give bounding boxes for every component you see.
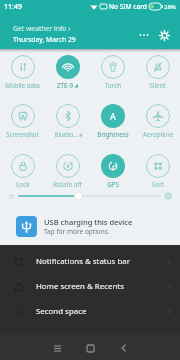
staticText: 11:49 bbox=[4, 2, 22, 12]
staticText: No SIM card bbox=[109, 2, 147, 11]
button[interactable]: Second space bbox=[0, 299, 180, 324]
staticText: Blueto.. bbox=[54, 130, 77, 138]
button[interactable]: Home bbox=[79, 337, 101, 359]
staticText: Torch bbox=[105, 81, 121, 89]
staticText: A bbox=[110, 110, 116, 122]
button[interactable]: Recents bbox=[46, 337, 68, 359]
button[interactable]: Rotate off bbox=[45, 154, 90, 188]
staticText: Screenshot bbox=[6, 130, 39, 138]
staticText: Lock bbox=[16, 180, 30, 188]
staticText: Home screen & Recents bbox=[36, 281, 124, 292]
button[interactable] bbox=[19, 190, 160, 202]
staticText: Tap for more options. bbox=[44, 227, 110, 236]
staticText: Silent bbox=[149, 81, 166, 89]
button[interactable]: GPS bbox=[90, 154, 135, 188]
staticText: Sort bbox=[152, 180, 164, 188]
staticText: ZTE-9 bbox=[57, 81, 73, 89]
button[interactable]: Screenshot bbox=[0, 104, 45, 138]
button[interactable]: USB charging this device bbox=[0, 212, 180, 240]
staticText: Get weather info › bbox=[13, 24, 71, 33]
staticText: Rotate off bbox=[53, 180, 82, 188]
button[interactable]: Silent bbox=[135, 55, 180, 89]
staticText: 28% bbox=[164, 3, 176, 11]
staticText: GPS bbox=[107, 180, 119, 188]
staticText: Brightness bbox=[97, 130, 129, 138]
button[interactable]: Sort bbox=[135, 154, 180, 188]
button[interactable]: Blueto.. bbox=[45, 104, 90, 138]
button[interactable]: Settings bbox=[156, 27, 172, 43]
button[interactable]: Home screen & Recents bbox=[0, 274, 180, 299]
staticText: Mobile data bbox=[5, 81, 40, 89]
staticText: Second space bbox=[36, 306, 87, 317]
button[interactable]: Torch bbox=[90, 55, 135, 89]
staticText: Thursday, March 29 bbox=[13, 35, 76, 44]
button[interactable]: Aeroplane bbox=[135, 104, 180, 138]
button[interactable]: Back bbox=[112, 337, 134, 359]
staticText: USB charging this device bbox=[44, 217, 133, 227]
button[interactable]: ZTE-9 bbox=[45, 55, 90, 89]
staticText: Notifications & status bar bbox=[36, 256, 130, 267]
staticText: Aeroplane bbox=[143, 130, 173, 138]
button[interactable]: Lock bbox=[0, 154, 45, 188]
button[interactable]: Get weather info › bbox=[13, 24, 71, 33]
button[interactable]: A bbox=[90, 104, 135, 138]
button[interactable]: More options bbox=[136, 27, 152, 43]
button[interactable]: Mobile data bbox=[0, 55, 45, 89]
button[interactable]: Notifications & status bar bbox=[0, 249, 180, 274]
